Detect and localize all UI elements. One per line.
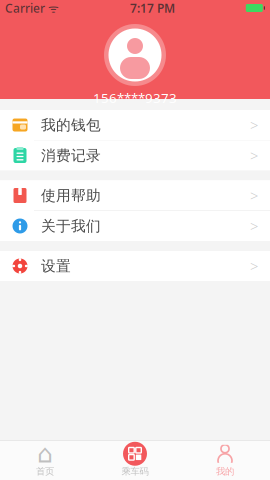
button[interactable]: 乘车码 — [90, 441, 180, 479]
staticText: ⌂ — [37, 439, 53, 468]
staticText: > — [250, 115, 258, 135]
staticText: 7:17 PM — [130, 0, 175, 16]
staticText: 我的钱包 — [41, 116, 101, 134]
button[interactable]: 关于我们 — [0, 211, 270, 241]
staticText: Carrier ᯤ — [5, 0, 59, 16]
button[interactable]: 首页 — [0, 441, 90, 479]
staticText: 我的 — [216, 466, 234, 477]
staticText: 156****9373 — [93, 89, 177, 107]
staticText: 消费记录 — [41, 146, 101, 164]
staticText: > — [250, 146, 258, 165]
staticText: > — [250, 186, 258, 205]
button[interactable]: 消费记录 — [0, 140, 270, 170]
button[interactable]: 使用帮助 — [0, 180, 270, 211]
button[interactable]: 我的钱包 — [0, 110, 270, 140]
staticText: 首页 — [36, 466, 54, 477]
staticText: > — [250, 216, 258, 236]
staticText: 关于我们 — [41, 217, 101, 235]
button[interactable]: 我的 — [180, 441, 270, 479]
staticText: 使用帮助 — [41, 186, 101, 204]
button[interactable]: 设置 — [0, 251, 270, 281]
staticText: 设置 — [41, 257, 71, 275]
staticText: > — [250, 256, 258, 276]
staticText: 乘车码 — [121, 466, 148, 477]
